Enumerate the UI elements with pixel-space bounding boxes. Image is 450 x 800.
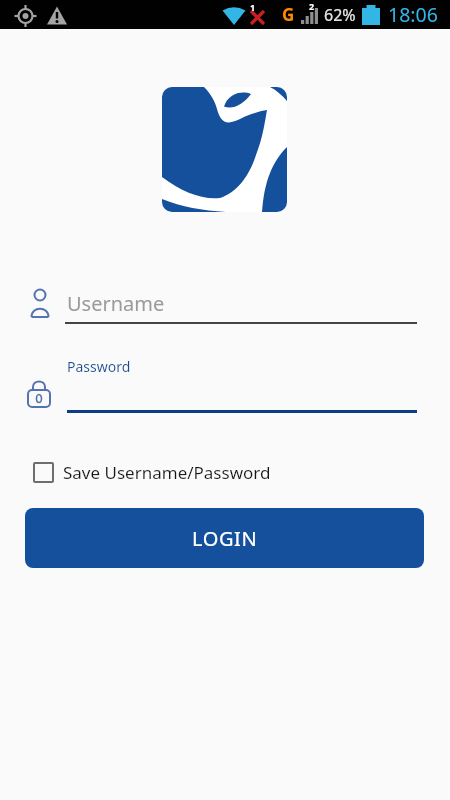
- staticText: Save Username/Password: [63, 461, 271, 484]
- button[interactable]: Username: [65, 288, 417, 324]
- staticText: Username: [67, 290, 165, 317]
- button[interactable]: LOGIN: [25, 508, 424, 568]
- staticText: 62%: [324, 4, 356, 26]
- staticText: 1: [250, 1, 256, 13]
- button[interactable]: Save Username/Password: [33, 461, 271, 484]
- staticText: Password: [67, 357, 131, 376]
- button[interactable]: [67, 380, 417, 413]
- staticText: LOGIN: [192, 525, 258, 552]
- staticText: 18:06: [388, 1, 438, 28]
- staticText: 2: [309, 0, 315, 12]
- staticText: G: [282, 3, 295, 26]
